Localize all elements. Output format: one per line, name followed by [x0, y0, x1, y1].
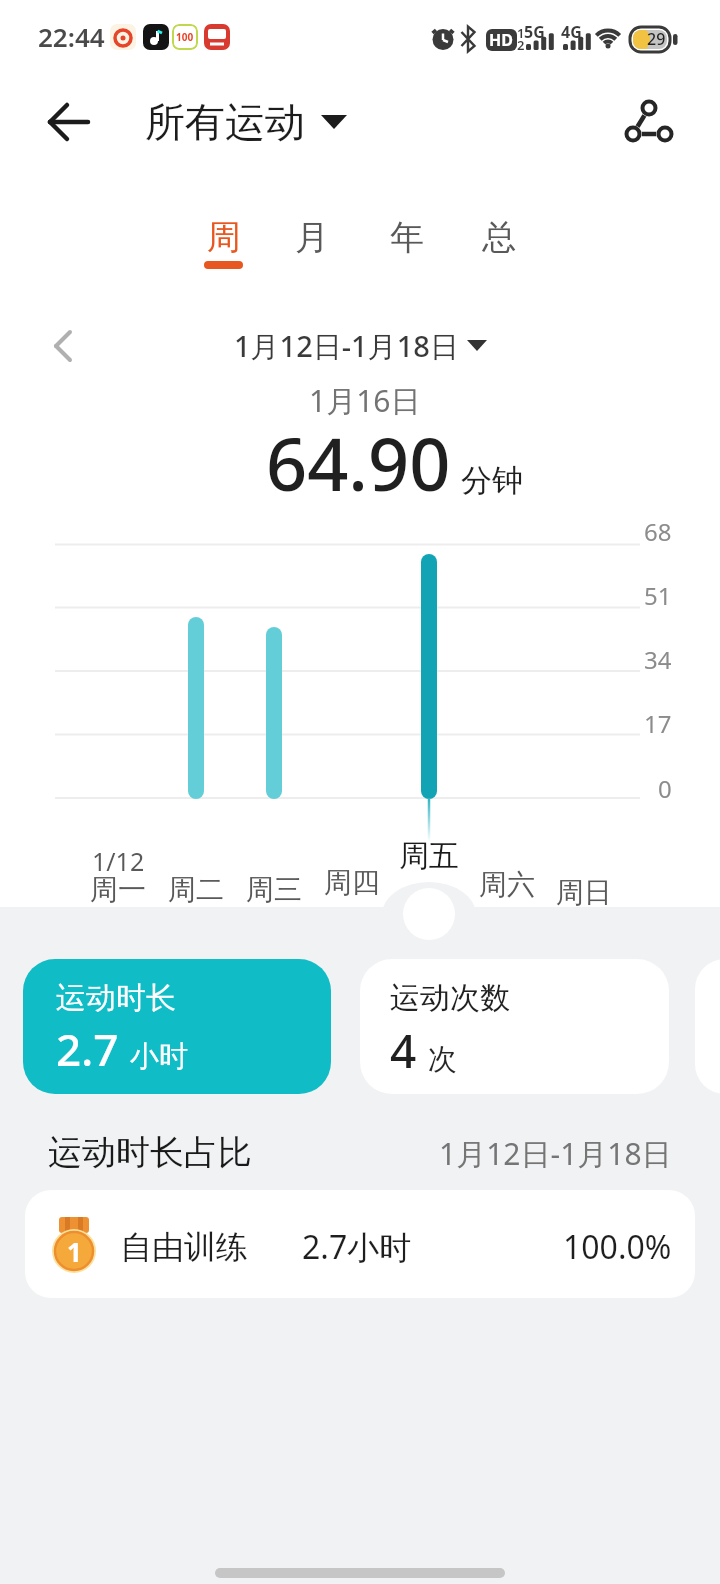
staticText: 100	[176, 30, 194, 44]
staticText: 17	[644, 707, 672, 740]
staticText: 次	[428, 1041, 457, 1078]
staticText: 1	[67, 1234, 82, 1269]
staticText: 34	[644, 643, 672, 676]
staticText: 周六	[479, 867, 535, 902]
staticText: 运动时长	[56, 979, 176, 1017]
staticText: 所有运动	[145, 97, 305, 147]
button[interactable]	[36, 96, 92, 152]
staticText: 运动次数	[390, 979, 510, 1017]
staticText: 1月16日	[309, 380, 421, 421]
staticText: 29	[647, 28, 666, 50]
staticText: 5G	[524, 21, 545, 43]
staticText: 4G	[561, 21, 582, 43]
staticText: 周	[207, 216, 241, 259]
staticText: 周二	[168, 872, 224, 907]
staticText: 分钟	[461, 461, 523, 500]
staticText: 2.7小时	[302, 1225, 412, 1269]
button[interactable]: 所有运动	[145, 92, 347, 152]
staticText: 周三	[246, 872, 302, 907]
staticText: 1月12日-1月18日	[234, 326, 459, 366]
button[interactable]: 1月12日-1月18日	[234, 326, 487, 366]
staticText: 周四	[324, 865, 380, 900]
staticText: 年	[390, 216, 424, 259]
staticText: 68	[644, 515, 672, 548]
staticText: 51	[644, 579, 672, 612]
staticText: 月	[295, 216, 329, 259]
staticText: 运动时长占比	[48, 1131, 252, 1174]
staticText: HD	[489, 29, 513, 51]
staticText: 周日	[556, 875, 612, 910]
staticText: 100.0%	[563, 1225, 672, 1269]
staticText: 2.7	[56, 1019, 119, 1079]
staticText: 小时	[130, 1038, 188, 1075]
staticText: 1	[517, 24, 525, 42]
button[interactable]: 运动次数	[360, 959, 669, 1094]
staticText: 总	[482, 216, 516, 259]
staticText: 自由训练	[120, 1227, 248, 1267]
button[interactable]: 1	[25, 1190, 695, 1298]
button[interactable]: 周	[179, 207, 269, 267]
staticText: 64.90	[266, 414, 451, 512]
staticText: 1/12	[92, 844, 145, 878]
button[interactable]: 总	[454, 207, 544, 267]
button[interactable]: 月	[267, 207, 357, 267]
button[interactable]: 运动时长	[23, 959, 331, 1094]
staticText: 4	[390, 1019, 417, 1079]
button[interactable]	[614, 90, 680, 156]
staticText: 周一	[90, 872, 146, 907]
staticText: 2	[517, 36, 525, 54]
button[interactable]: 年	[362, 207, 452, 267]
staticText: 0	[658, 772, 672, 805]
staticText: 周五	[399, 837, 459, 875]
staticText: 1月12日-1月18日	[439, 1133, 672, 1174]
button[interactable]	[40, 326, 84, 366]
staticText: 22:44	[38, 19, 105, 54]
